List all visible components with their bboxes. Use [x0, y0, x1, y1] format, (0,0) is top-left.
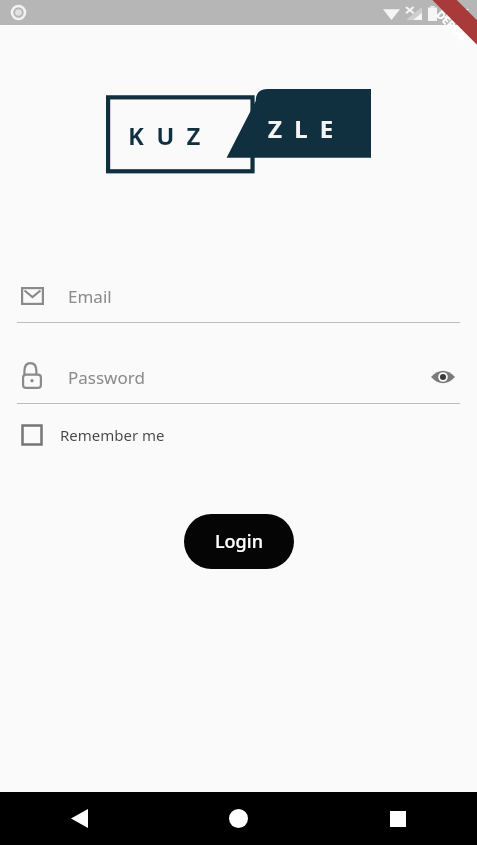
staticText: Z L E — [268, 112, 337, 145]
button[interactable]: Email — [17, 270, 460, 322]
other: Password — [17, 362, 47, 392]
staticText: Login — [215, 529, 263, 554]
staticText: Email — [68, 285, 112, 308]
staticText: Remember me — [60, 425, 165, 445]
staticText: Password — [68, 366, 145, 389]
staticText: K U Z — [128, 119, 204, 152]
button[interactable]: Back — [0, 792, 159, 845]
button[interactable]: Home — [159, 792, 318, 845]
other: Email — [17, 281, 47, 311]
button[interactable]: Password — [17, 351, 460, 403]
button[interactable]: Remember me — [17, 418, 169, 452]
button[interactable]: Show password — [426, 360, 460, 394]
button[interactable]: Login — [184, 514, 294, 569]
button[interactable]: Recents — [318, 792, 477, 845]
staticText: 2:16 — [444, 4, 470, 22]
staticText: DEBUG — [433, 7, 471, 44]
